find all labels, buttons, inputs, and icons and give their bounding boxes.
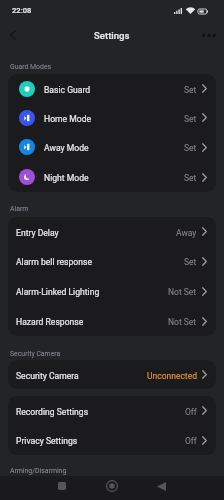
button[interactable]: Home Mode <box>8 103 216 132</box>
button[interactable]: Basic Guard <box>8 74 216 103</box>
button[interactable]: Security Camera <box>8 360 216 389</box>
staticText: Set <box>184 257 197 267</box>
staticText: Set <box>184 85 197 95</box>
button[interactable]: Home <box>100 474 124 498</box>
staticText: Away Mode <box>44 143 89 153</box>
staticText: Off <box>185 407 197 417</box>
button[interactable]: More options <box>195 21 223 49</box>
button[interactable]: Privacy Settings <box>8 425 216 455</box>
staticText: Set <box>184 114 197 124</box>
button[interactable]: Recording Settings <box>8 396 216 425</box>
button[interactable]: Alarm-Linked Lighting <box>8 276 216 306</box>
staticText: Alarm <box>10 205 29 213</box>
staticText: Privacy Settings <box>16 436 78 446</box>
staticText: Night Mode <box>44 173 89 183</box>
staticText: Unconnected <box>147 371 197 381</box>
staticText: Alarm bell response <box>16 257 92 267</box>
staticText: Hazard Response <box>16 317 84 327</box>
staticText: Not Set <box>168 287 197 297</box>
staticText: Recording Settings <box>16 407 89 417</box>
staticText: Off <box>185 436 197 446</box>
staticText: Guard Modes <box>10 63 52 71</box>
staticText: Alarm-Linked Lighting <box>16 287 100 297</box>
button[interactable]: Alarm bell response <box>8 246 216 276</box>
staticText: Settings <box>94 30 130 41</box>
button[interactable]: Hazard Response <box>8 306 216 336</box>
staticText: Entry Delay <box>16 228 59 238</box>
staticText: Basic Guard <box>44 85 91 95</box>
button[interactable]: Night Mode <box>8 162 216 192</box>
staticText: Not Set <box>168 317 197 327</box>
button[interactable]: Back <box>149 474 173 498</box>
button[interactable]: Entry Delay <box>8 217 216 246</box>
staticText: Security Camera <box>10 350 61 358</box>
staticText: Set <box>184 173 197 183</box>
staticText: Away <box>176 228 197 238</box>
staticText: Set <box>184 143 197 153</box>
staticText: Arming/Disarming <box>10 467 67 475</box>
staticText: Home Mode <box>44 114 92 124</box>
staticText: 22:08 <box>12 6 32 15</box>
staticText: Security Camera <box>16 371 79 381</box>
button[interactable]: Away Mode <box>8 132 216 162</box>
button[interactable]: Recent apps <box>50 474 74 498</box>
